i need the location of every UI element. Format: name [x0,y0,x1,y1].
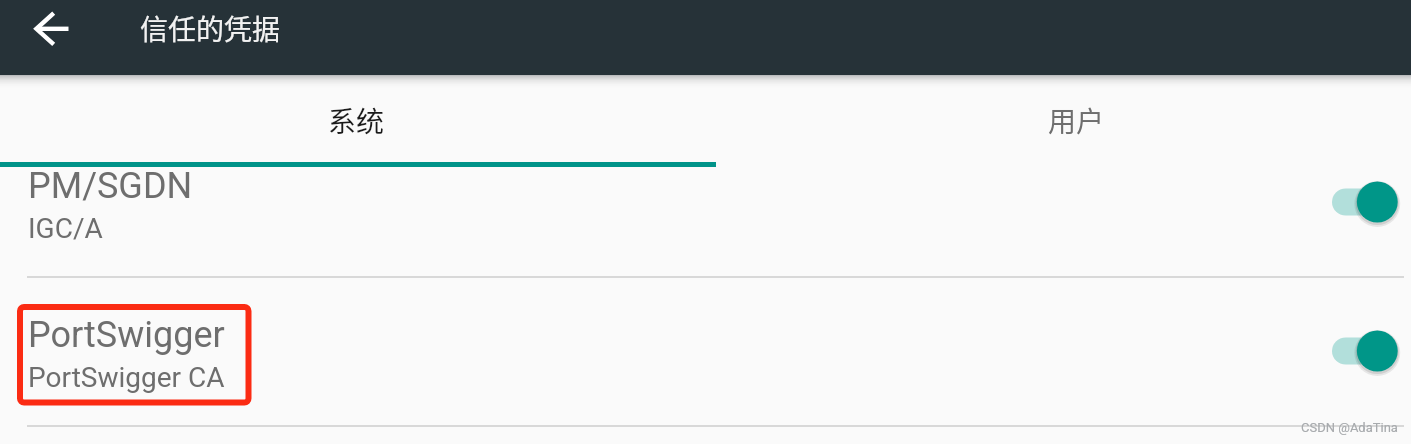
button[interactable]: Toggle certificate [1332,178,1404,226]
button[interactable]: 系统 [0,75,716,167]
staticText: PortSwigger CA [28,361,225,394]
button[interactable]: Toggle certificate [1332,327,1404,375]
staticText: 信任的凭据 [140,8,281,49]
staticText: 系统 [328,100,385,141]
staticText: CSDN @AdaTina [1301,420,1398,435]
button[interactable]: PM/SGDN [0,126,1411,275]
button[interactable]: Back [8,2,96,56]
button[interactable]: PortSwigger [0,275,1411,424]
staticText: 用户 [1048,100,1105,141]
staticText: PM/SGDN [28,165,193,207]
button[interactable]: 用户 [716,75,1411,167]
staticText: IGC/A [28,212,103,245]
staticText: PortSwigger [28,314,225,356]
